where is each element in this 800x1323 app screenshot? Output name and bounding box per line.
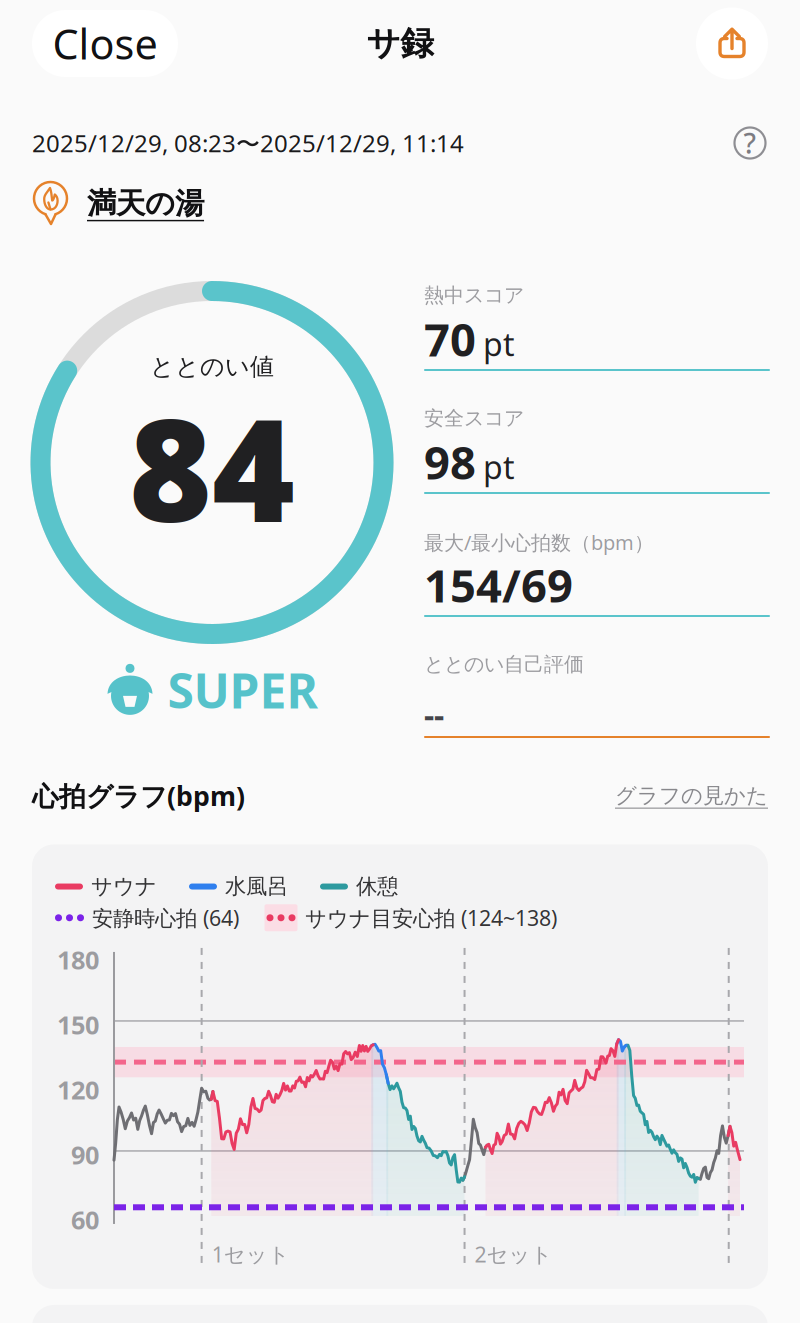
staticText: 水風呂 <box>225 873 288 900</box>
staticText: 最大/最小心拍数（bpm） <box>424 529 654 556</box>
staticText: 2セット <box>475 1240 553 1268</box>
staticText: 154/69 <box>424 555 573 615</box>
button[interactable]: Close <box>32 10 178 77</box>
button[interactable]: Help <box>732 125 768 161</box>
staticText: 安静時心拍 (64) <box>92 904 239 932</box>
staticText: 2025/12/29, 08:23〜2025/12/29, 11:14 <box>32 127 464 159</box>
staticText: ととのい自己評価 <box>424 652 584 677</box>
staticText: 安全スコア <box>424 406 524 431</box>
staticText: 150 <box>57 1008 99 1041</box>
staticText: 60 <box>71 1203 99 1236</box>
staticText: 心拍グラフ(bpm) <box>32 778 245 813</box>
staticText: 70 <box>424 309 476 369</box>
staticText: サウナ目安心拍 (124~138) <box>305 904 557 932</box>
staticText: 90 <box>71 1138 99 1171</box>
staticText: Close <box>52 16 157 71</box>
staticText: サ録 <box>366 23 433 64</box>
staticText: ととのい値 <box>150 352 274 381</box>
staticText: 休憩 <box>356 873 398 900</box>
staticText: 120 <box>57 1073 99 1106</box>
staticText: 180 <box>57 943 99 976</box>
staticText: SUPER <box>167 658 317 722</box>
staticText: グラフの見かた <box>615 783 768 809</box>
staticText: pt <box>483 322 515 365</box>
staticText: 98 <box>424 432 476 492</box>
staticText: pt <box>483 445 515 488</box>
button[interactable]: グラフの見かた <box>615 783 768 809</box>
staticText: サウナ <box>91 873 157 900</box>
staticText: ? <box>743 124 756 162</box>
staticText: -- <box>424 693 444 736</box>
staticText: 84 <box>129 373 295 561</box>
staticText: 満天の湯 <box>87 185 204 221</box>
staticText: 1セット <box>212 1240 290 1268</box>
button[interactable]: Share <box>696 7 768 79</box>
staticText: 熱中スコア <box>424 283 524 308</box>
